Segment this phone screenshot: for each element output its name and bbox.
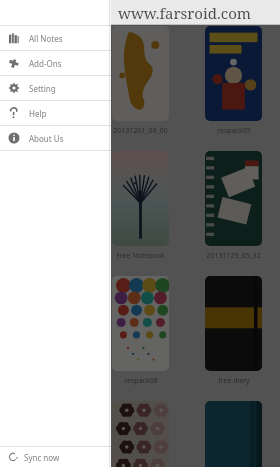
button[interactable]: respack05 [187, 26, 280, 151]
staticText: Free Notebook [116, 251, 165, 261]
button[interactable]: otes [0, 26, 94, 151]
staticText: 20131201_09_00 [113, 126, 168, 136]
button[interactable]: album [0, 401, 94, 467]
button[interactable]: Help [0, 101, 111, 125]
button[interactable]: test1 [187, 401, 280, 467]
button[interactable]: 20131201_09_00 [94, 26, 187, 151]
staticText: www.farsroid.com [118, 3, 251, 23]
button[interactable]: respack08 [94, 276, 187, 401]
staticText: Sync now [24, 452, 60, 463]
button[interactable]: free diary [187, 276, 280, 401]
staticText: Help [29, 108, 47, 119]
button[interactable]: Setting [0, 76, 111, 100]
staticText: respack05 [217, 126, 251, 136]
staticText: Setting [29, 83, 56, 94]
staticText: otes [40, 126, 55, 136]
staticText: 20131129_05_32 [206, 251, 261, 261]
staticText: free diary [218, 376, 250, 386]
button[interactable]: All Notes [0, 26, 111, 50]
staticText: Add-Ons [29, 58, 62, 69]
staticText: respack08 [124, 376, 158, 386]
button[interactable]: 20131129_05_32 [187, 151, 280, 276]
button[interactable]: respack2 [94, 401, 187, 467]
button[interactable]: About Us [0, 126, 111, 150]
button[interactable]: Sync now [0, 447, 111, 467]
button[interactable]: Free Notebook [94, 151, 187, 276]
button[interactable]: Add-Ons [0, 51, 111, 75]
staticText: About Us [29, 133, 64, 144]
staticText: All Notes [29, 33, 63, 44]
